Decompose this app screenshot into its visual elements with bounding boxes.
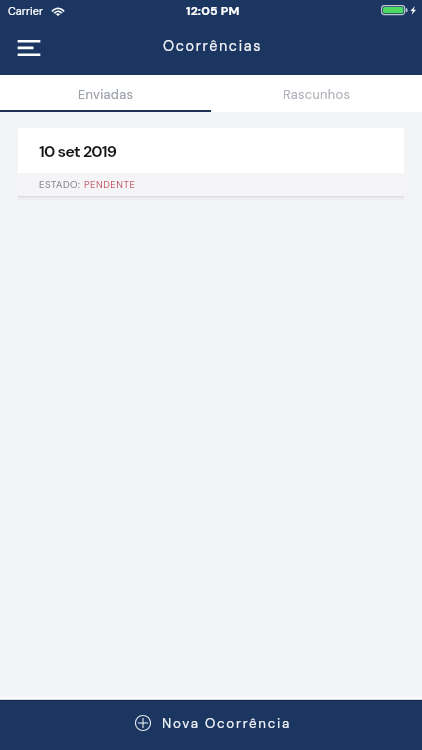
staticText: Enviadas (78, 86, 134, 103)
button[interactable]: Nova Ocorrência (0, 700, 422, 750)
staticText: Carrier (8, 4, 44, 18)
button[interactable]: 10 set 2019 (18, 128, 404, 196)
staticText: PENDENTE (84, 178, 136, 191)
staticText: Ocorrências (163, 37, 262, 56)
button[interactable]: Menu (4, 28, 54, 68)
staticText: 12:05 PM (186, 3, 240, 19)
staticText: ESTADO: (39, 178, 81, 191)
button[interactable]: Enviadas (0, 75, 211, 112)
staticText: Rascunhos (283, 86, 351, 103)
staticText: Nova Ocorrência (162, 715, 292, 732)
staticText: 10 set 2019 (39, 141, 117, 162)
button[interactable]: Rascunhos (211, 75, 422, 112)
